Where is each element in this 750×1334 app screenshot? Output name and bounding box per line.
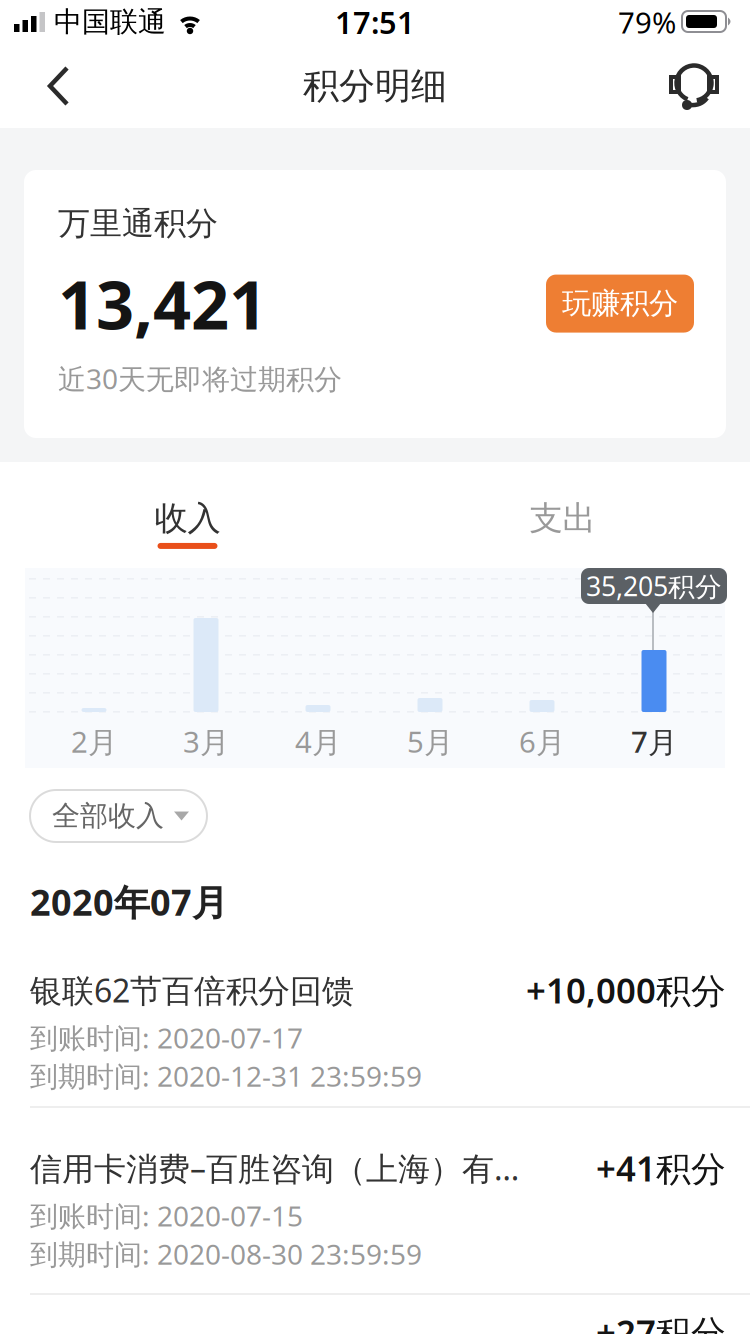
staticText: 到账时间: 2020-07-17 bbox=[30, 1019, 303, 1056]
button[interactable]: 玩赚积分 bbox=[546, 275, 694, 333]
staticText: 信用卡消费–百胜咨询（上海）有… bbox=[30, 1147, 519, 1189]
button[interactable]: 支出 bbox=[375, 462, 750, 549]
button[interactable]: 返回 bbox=[0, 66, 92, 106]
staticText: 2月 bbox=[71, 722, 117, 761]
staticText: 银联62节百倍积分回馈 bbox=[30, 969, 354, 1011]
staticText: 万里通积分 bbox=[58, 204, 218, 243]
staticText: 中国联通 bbox=[54, 5, 166, 39]
button[interactable]: 收入 bbox=[0, 462, 375, 549]
staticText: 4月 bbox=[295, 722, 341, 761]
staticText: 7月 bbox=[631, 722, 677, 761]
staticText: 到期时间: 2020-12-31 23:59:59 bbox=[30, 1057, 422, 1094]
staticText: 2020年07月 bbox=[30, 878, 228, 926]
staticText: 玩赚积分 bbox=[562, 286, 678, 322]
button[interactable]: 全部收入 bbox=[30, 790, 207, 842]
staticText: +41积分 bbox=[596, 1145, 726, 1191]
staticText: 全部收入 bbox=[52, 799, 164, 833]
staticText: 17:51 bbox=[335, 2, 415, 42]
staticText: 35,205积分 bbox=[586, 568, 722, 604]
staticText: 收入 bbox=[154, 498, 220, 539]
staticText: 3月 bbox=[183, 722, 229, 761]
staticText: +10,000积分 bbox=[526, 967, 726, 1013]
staticText: 到期时间: 2020-08-30 23:59:59 bbox=[30, 1235, 422, 1272]
staticText: 积分明细 bbox=[303, 64, 447, 108]
staticText: 到账时间: 2020-07-15 bbox=[30, 1197, 303, 1234]
staticText: 支出 bbox=[529, 498, 595, 539]
staticText: 近30天无即将过期积分 bbox=[58, 360, 342, 397]
staticText: 79% bbox=[618, 2, 676, 41]
staticText: 13,421 bbox=[58, 259, 267, 348]
button[interactable]: 客服 bbox=[654, 62, 750, 110]
staticText: +27积分 bbox=[596, 1309, 726, 1334]
staticText: 6月 bbox=[519, 722, 565, 761]
staticText: 5月 bbox=[407, 722, 453, 761]
